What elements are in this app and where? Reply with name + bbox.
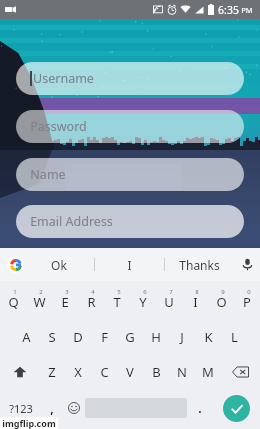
staticText: O xyxy=(216,293,227,311)
button[interactable]: J xyxy=(169,319,195,354)
staticText: ?123 xyxy=(9,401,33,416)
button[interactable]: Name xyxy=(16,158,244,191)
staticText: Q xyxy=(8,293,19,311)
staticText: 6 xyxy=(143,288,147,296)
staticText: 2 xyxy=(39,288,43,296)
button[interactable]: ?123 xyxy=(0,389,42,427)
staticText: A xyxy=(22,328,31,346)
button[interactable]: W xyxy=(26,284,52,319)
staticText: 7 xyxy=(169,288,173,296)
staticText: Name xyxy=(30,166,66,183)
staticText: . xyxy=(198,400,202,416)
staticText: F xyxy=(101,328,108,346)
staticText: X xyxy=(74,363,82,381)
staticText: J xyxy=(180,328,184,346)
staticText: B xyxy=(152,363,161,381)
staticText: W xyxy=(33,293,46,311)
staticText: M xyxy=(202,363,214,381)
button[interactable]: H xyxy=(143,319,169,354)
button[interactable]: Thanks xyxy=(165,248,234,281)
button[interactable]: Voice input xyxy=(234,248,260,281)
staticText: T xyxy=(113,293,121,311)
staticText: imgflip.com xyxy=(2,417,56,429)
button[interactable]: A xyxy=(13,319,39,354)
staticText: K xyxy=(204,328,213,346)
button[interactable]: U xyxy=(156,284,182,319)
button[interactable]: Enter xyxy=(212,389,260,427)
button[interactable]: Ok xyxy=(24,248,94,281)
staticText: R xyxy=(87,293,96,311)
staticText: Email Address xyxy=(30,213,113,230)
staticText: Z xyxy=(48,363,56,381)
button[interactable]: , xyxy=(42,389,62,427)
button[interactable]: E xyxy=(52,284,78,319)
button[interactable]: V xyxy=(117,354,143,389)
button[interactable]: Username xyxy=(16,62,244,95)
button[interactable]: B xyxy=(143,354,169,389)
staticText: 4 xyxy=(91,288,95,296)
staticText: C xyxy=(100,363,109,381)
staticText: E xyxy=(61,293,69,311)
button[interactable]: X xyxy=(65,354,91,389)
button[interactable]: N xyxy=(169,354,195,389)
button[interactable]: Backspace xyxy=(221,354,260,389)
staticText: , xyxy=(50,400,54,416)
button[interactable]: C xyxy=(91,354,117,389)
staticText: H xyxy=(151,328,161,346)
staticText: N xyxy=(177,363,187,381)
staticText: 0 xyxy=(247,288,251,296)
staticText: U xyxy=(164,293,174,311)
button[interactable]: Emoji xyxy=(62,389,85,427)
button[interactable]: L xyxy=(221,319,247,354)
staticText: 6:35 xyxy=(218,3,239,17)
staticText: 3 xyxy=(65,288,69,296)
staticText: V xyxy=(126,363,134,381)
button[interactable]: Y xyxy=(130,284,156,319)
button[interactable]: I xyxy=(95,248,164,281)
staticText: S xyxy=(48,328,56,346)
staticText: I xyxy=(193,293,198,311)
button[interactable]: T xyxy=(104,284,130,319)
staticText: Y xyxy=(139,293,147,311)
staticText: 9 xyxy=(221,288,225,296)
button[interactable]: R xyxy=(78,284,104,319)
button[interactable]: . xyxy=(187,389,212,427)
button[interactable]: F xyxy=(91,319,117,354)
staticText: L xyxy=(231,328,238,346)
staticText: PM xyxy=(241,5,253,15)
button[interactable]: Email Address xyxy=(16,205,244,238)
staticText: 5 xyxy=(117,288,121,296)
staticText: I xyxy=(127,257,132,273)
staticText: Password xyxy=(30,118,87,135)
staticText: 8 xyxy=(195,288,199,296)
staticText: G xyxy=(125,328,135,346)
staticText: D xyxy=(73,328,83,346)
staticText: Thanks xyxy=(179,257,220,273)
button[interactable]: G xyxy=(117,319,143,354)
button[interactable]: Shift xyxy=(0,354,39,389)
button[interactable]: Z xyxy=(39,354,65,389)
staticText: 1 xyxy=(13,288,17,296)
button[interactable]: Q xyxy=(0,284,26,319)
button[interactable]: S xyxy=(39,319,65,354)
button[interactable]: K xyxy=(195,319,221,354)
button[interactable]: I xyxy=(182,284,208,319)
button[interactable]: O xyxy=(208,284,234,319)
staticText: P xyxy=(243,293,251,311)
button[interactable]: Password xyxy=(16,110,244,143)
button[interactable]: M xyxy=(195,354,221,389)
button[interactable]: D xyxy=(65,319,91,354)
button[interactable]: P xyxy=(234,284,260,319)
button[interactable]: Google xyxy=(7,256,24,273)
staticText: Ok xyxy=(51,257,67,273)
staticText: Username xyxy=(33,70,94,87)
